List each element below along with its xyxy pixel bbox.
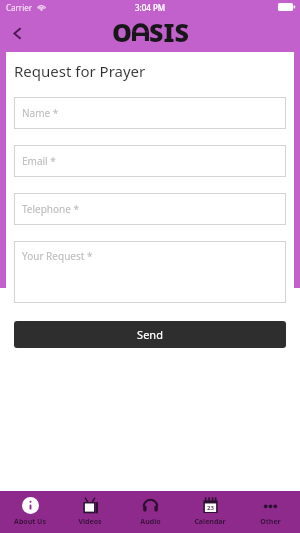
- staticText: 23: [207, 504, 214, 512]
- button[interactable]: Name *: [14, 97, 286, 129]
- staticText: Videos: [78, 517, 102, 527]
- button[interactable]: Videos: [60, 491, 120, 533]
- button[interactable]: About Us: [0, 491, 60, 533]
- staticText: Carrier: [6, 2, 33, 13]
- staticText: 3:04 PM: [135, 2, 166, 13]
- staticText: Calendar: [194, 517, 226, 527]
- staticText: Other: [260, 517, 281, 527]
- staticText: Request for Prayer: [14, 61, 146, 81]
- button[interactable]: 23: [180, 491, 240, 533]
- staticText: SIS: [149, 15, 189, 49]
- staticText: Name *: [22, 106, 59, 120]
- button[interactable]: Send: [14, 321, 286, 348]
- staticText: Email *: [22, 154, 56, 168]
- staticText: Audio: [140, 517, 161, 527]
- staticText: Telephone *: [22, 202, 80, 216]
- button[interactable]: Other: [240, 491, 300, 533]
- staticText: Your Request *: [22, 249, 93, 263]
- button[interactable]: Back: [0, 16, 34, 50]
- staticText: Send: [137, 327, 163, 342]
- staticText: O: [112, 15, 132, 49]
- button[interactable]: Your Request *: [14, 241, 286, 303]
- button[interactable]: Telephone *: [14, 193, 286, 225]
- button[interactable]: Email *: [14, 145, 286, 177]
- button[interactable]: Audio: [120, 491, 180, 533]
- staticText: About Us: [14, 517, 46, 527]
